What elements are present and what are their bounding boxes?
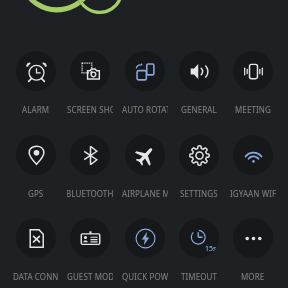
staticText: BLUETOOTH — [67, 188, 113, 199]
button[interactable]: Quick power — [118, 213, 172, 277]
button[interactable]: Auto rotate — [118, 46, 172, 110]
staticText: QUICK POWER — [122, 271, 168, 282]
staticText: SETTINGS — [180, 188, 218, 199]
staticText: GUEST MODE — [67, 271, 113, 282]
staticText: MORE — [241, 271, 265, 282]
staticText: MEETING — [235, 104, 271, 115]
staticText: 15s — [205, 244, 217, 254]
button[interactable]: General — [172, 46, 226, 110]
staticText: GPS — [28, 188, 44, 199]
staticText: AUTO ROTATE — [122, 104, 168, 115]
button[interactable]: Guest mode — [63, 213, 117, 277]
button[interactable]: Airplane mode — [118, 130, 172, 194]
staticText: IGYAAN WIFI — [230, 188, 276, 199]
button[interactable]: Data connection — [9, 213, 63, 277]
staticText: TIMEOUT — [181, 271, 218, 282]
staticText: DATA CONN — [13, 271, 59, 282]
staticText: SCREEN SHOT — [67, 104, 113, 115]
staticText: GENERAL — [181, 104, 217, 115]
button[interactable]: Meeting — [226, 46, 280, 110]
button[interactable]: Wi-Fi — [226, 130, 280, 194]
staticText: AIRPLANE MODE — [122, 188, 168, 199]
staticText: ALARM — [22, 104, 50, 115]
button[interactable]: Timeout — [172, 213, 226, 277]
button[interactable]: GPS — [9, 130, 63, 194]
button[interactable]: Bluetooth — [63, 130, 117, 194]
button[interactable]: Screen shot — [63, 46, 117, 110]
button[interactable]: Alarm — [9, 46, 63, 110]
button[interactable]: More — [226, 213, 280, 277]
button[interactable]: Settings — [172, 130, 226, 194]
